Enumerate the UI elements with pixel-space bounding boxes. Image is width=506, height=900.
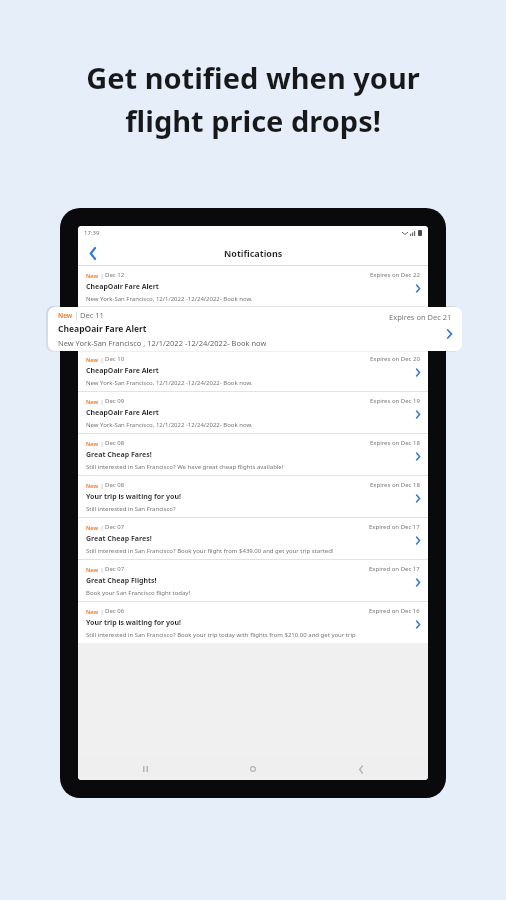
staticText: New [86,524,99,531]
staticText: New York-San Francisco , 12/1/2022 -12/2… [86,337,253,345]
button[interactable]: New [48,307,462,351]
button[interactable]: New [78,266,428,307]
staticText: Dec 08 [105,481,125,489]
staticText: New [86,566,99,573]
staticText: Expires on Dec 19 [370,397,420,405]
staticText: | [99,356,105,363]
staticText: New [86,608,99,615]
button[interactable]: Back [354,762,368,776]
staticText: New [86,272,99,279]
staticText: | [99,482,105,489]
staticText: Great Cheap Fares! [86,534,152,544]
staticText: Expired on Dec 17 [369,523,420,531]
staticText: CheapOair Fare Alert [86,324,159,334]
button[interactable]: New [78,518,428,559]
staticText: | [99,398,105,405]
staticText: Still interested in San Francisco? [86,505,176,513]
staticText: Notifications [224,247,283,259]
staticText: | [99,524,105,531]
staticText: Get notified when your [86,58,420,97]
staticText: flight price drops! [125,101,381,140]
staticText: Dec 11 [80,310,104,320]
button[interactable]: Home [246,762,260,776]
staticText: Expired on Dec 16 [369,607,420,615]
staticText: New York-San Francisco, 12/1/2022 -12/24… [86,421,253,429]
staticText: Dec 07 [105,565,125,573]
staticText: New [58,311,73,320]
staticText: Expires on Dec 22 [370,271,420,279]
staticText: New [86,398,99,405]
staticText: Dec 07 [105,523,125,531]
staticText: Expires on Dec 20 [370,355,420,363]
button[interactable]: Recents [138,762,152,776]
staticText: Still interested in San Francisco? Book … [86,547,334,555]
staticText: | [99,608,105,615]
staticText: Dec 06 [105,607,125,615]
staticText: | [99,440,105,447]
staticText: Expired on Dec 17 [369,565,420,573]
staticText: | [99,566,105,573]
staticText: Dec 09 [105,397,125,405]
staticText: | [73,311,80,320]
staticText: New York-San Francisco, 12/1/2022 -12/24… [86,295,253,303]
staticText: New [86,356,99,363]
staticText: New York-San Francisco , 12/1/2022 -12/2… [58,338,267,348]
staticText: Dec 12 [105,271,125,279]
staticText: Dec 10 [105,355,125,363]
staticText: Expires on Dec 18 [370,481,420,489]
staticText: Great Cheap Fares! [86,450,152,460]
staticText: Great Cheap Flights! [86,576,157,586]
button[interactable]: Back [84,244,102,262]
staticText: 17:39 [84,229,100,237]
staticText: Still interested in San Francisco? Book … [86,631,369,639]
staticText: | [99,314,105,321]
button[interactable]: New [78,392,428,433]
staticText: Expires on Dec 21 [370,313,420,321]
staticText: Book your San Francisco flight today! [86,589,191,597]
button[interactable]: New [78,476,428,517]
button[interactable]: New [78,350,428,391]
staticText: Your trip is waiting for you! [86,492,181,502]
button[interactable]: New [78,602,428,643]
staticText: New [86,482,99,489]
staticText: Your trip is waiting for you! [86,618,181,628]
staticText: Dec 08 [105,439,125,447]
staticText: New [86,314,99,321]
staticText: CheapOair Fare Alert [86,408,159,418]
staticText: New York-San Francisco, 12/1/2022 -12/24… [86,379,253,387]
button[interactable]: New [78,434,428,475]
staticText: CheapOair Fare Alert [58,323,147,335]
staticText: CheapOair Fare Alert [86,366,159,376]
button[interactable]: New [78,308,428,349]
staticText: Expires on Dec 18 [370,439,420,447]
staticText: Still interested in San Francisco? We ha… [86,463,284,471]
staticText: CheapOair Fare Alert [86,282,159,292]
staticText: New [86,440,99,447]
staticText: Expires on Dec 21 [389,312,452,322]
button[interactable]: New [78,560,428,601]
staticText: | [99,272,105,279]
